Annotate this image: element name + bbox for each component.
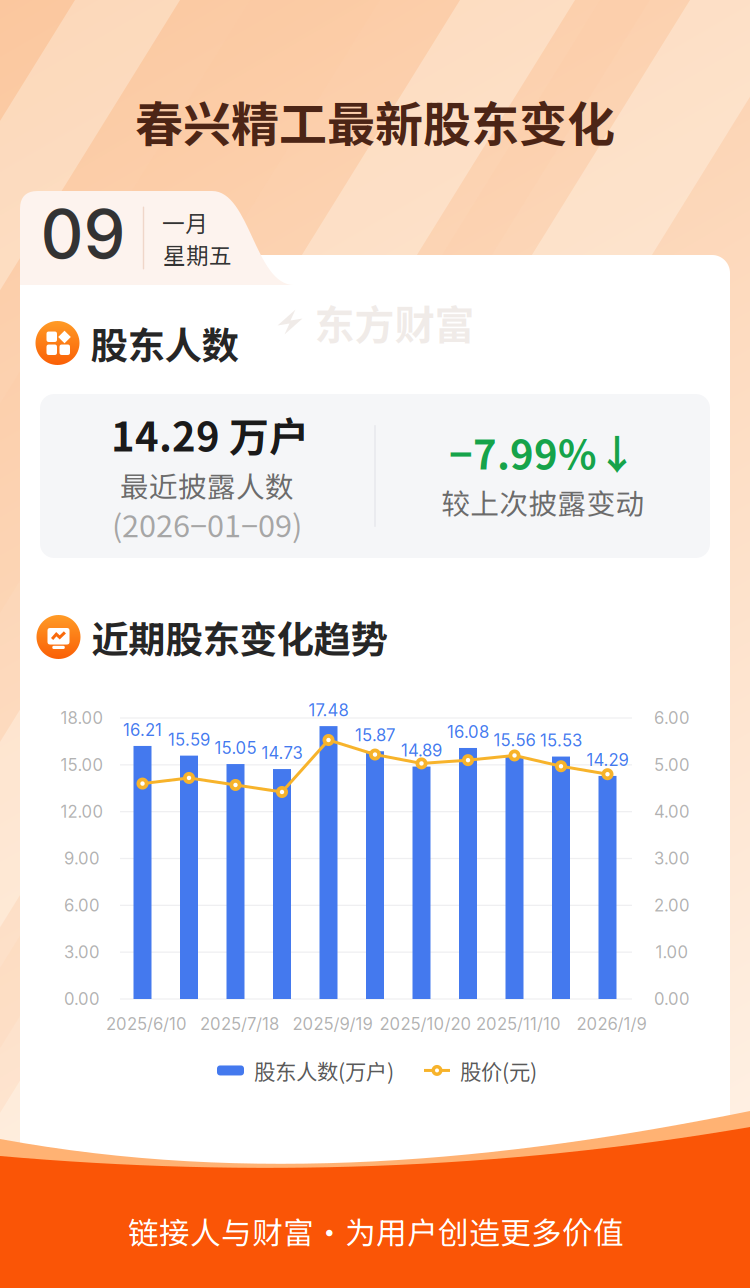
staticText: 链接人与财富·为用户创造更多价值 xyxy=(128,1209,624,1253)
staticText: −7.99%↓ xyxy=(449,423,637,481)
staticText: 15.53 xyxy=(540,730,582,751)
staticText: 17.48 xyxy=(308,700,348,720)
staticText: 星期五 xyxy=(163,238,232,270)
staticText: 6.00 xyxy=(654,708,690,728)
staticText: 股东人数(万户) xyxy=(254,1055,394,1086)
staticText: 2025/6/10 xyxy=(106,1014,187,1034)
staticText: 最近披露人数 xyxy=(120,464,294,506)
staticText: 2.00 xyxy=(654,895,690,915)
staticText: 16.08 xyxy=(447,722,489,742)
staticText: 14.29 xyxy=(586,750,628,770)
staticText: 2025/9/19 xyxy=(292,1014,372,1034)
staticText: 0.00 xyxy=(654,989,690,1009)
staticText: 2025/10/20 xyxy=(379,1014,471,1034)
staticText: 18.00 xyxy=(60,708,103,728)
staticText: 12.00 xyxy=(60,802,103,822)
staticText: 东方财富 xyxy=(314,293,474,351)
staticText: 09 xyxy=(40,194,125,274)
staticText: 较上次披露变动 xyxy=(441,481,644,523)
staticText: 1.00 xyxy=(655,942,688,962)
staticText: 15.05 xyxy=(214,738,256,758)
staticText: 3.00 xyxy=(64,942,100,962)
staticText: 2025/11/10 xyxy=(476,1014,561,1034)
staticText: 15.59 xyxy=(168,729,210,750)
staticText: 近期股东变化趋势 xyxy=(91,610,387,664)
staticText: 16.21 xyxy=(123,720,162,740)
staticText: 2025/7/18 xyxy=(200,1014,279,1034)
staticText: 春兴精工最新股东变化 xyxy=(135,86,615,156)
staticText: 15.87 xyxy=(355,725,395,745)
staticText: 5.00 xyxy=(654,755,690,775)
staticText: 4.00 xyxy=(654,802,690,822)
staticText: 6.00 xyxy=(64,895,100,915)
staticText: 一月 xyxy=(162,206,208,238)
staticText: 2026/1/9 xyxy=(576,1014,646,1034)
staticText: 股价(元) xyxy=(460,1055,537,1086)
staticText: 15.00 xyxy=(60,755,103,775)
staticText: 14.29 万户 xyxy=(111,405,309,463)
staticText: 股东人数 xyxy=(90,316,238,370)
staticText: 9.00 xyxy=(64,848,100,869)
staticText: 0.00 xyxy=(64,989,100,1009)
staticText: 15.56 xyxy=(493,730,535,750)
staticText: 14.89 xyxy=(401,740,442,761)
staticText: 3.00 xyxy=(654,848,690,869)
staticText: 14.73 xyxy=(261,743,302,763)
staticText: (2026−01−09) xyxy=(112,502,302,546)
